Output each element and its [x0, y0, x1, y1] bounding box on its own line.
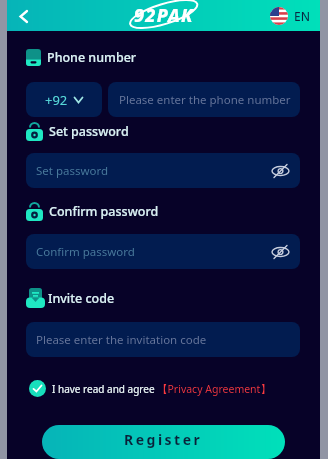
staticText: I have read and agree	[52, 382, 155, 396]
button[interactable]	[11, 4, 35, 28]
button[interactable]: Set password	[26, 153, 300, 188]
button[interactable]: Please enter the invitation code	[26, 322, 300, 357]
staticText: Please enter the phone number	[119, 92, 291, 108]
button[interactable]: EN	[270, 7, 310, 25]
button[interactable]: I have read and agree	[29, 380, 300, 397]
staticText: Set password	[49, 123, 129, 140]
staticText: Invite code	[48, 290, 115, 307]
staticText: 92PAK	[134, 3, 194, 28]
staticText: Set password	[36, 163, 109, 179]
staticText: Confirm password	[36, 244, 135, 260]
staticText: Phone number	[47, 49, 137, 66]
staticText: EN	[294, 8, 310, 24]
staticText: Please enter the invitation code	[36, 332, 207, 348]
button[interactable]: +92	[26, 82, 102, 117]
staticText: +92	[45, 91, 68, 109]
staticText: Confirm password	[49, 203, 159, 220]
button[interactable]: Please enter the phone number	[108, 82, 300, 117]
button[interactable]: 【Privacy Agreement】	[157, 382, 271, 396]
button[interactable]: Register	[42, 425, 285, 459]
staticText: Register	[124, 430, 203, 449]
button[interactable]: Confirm password	[26, 234, 300, 269]
